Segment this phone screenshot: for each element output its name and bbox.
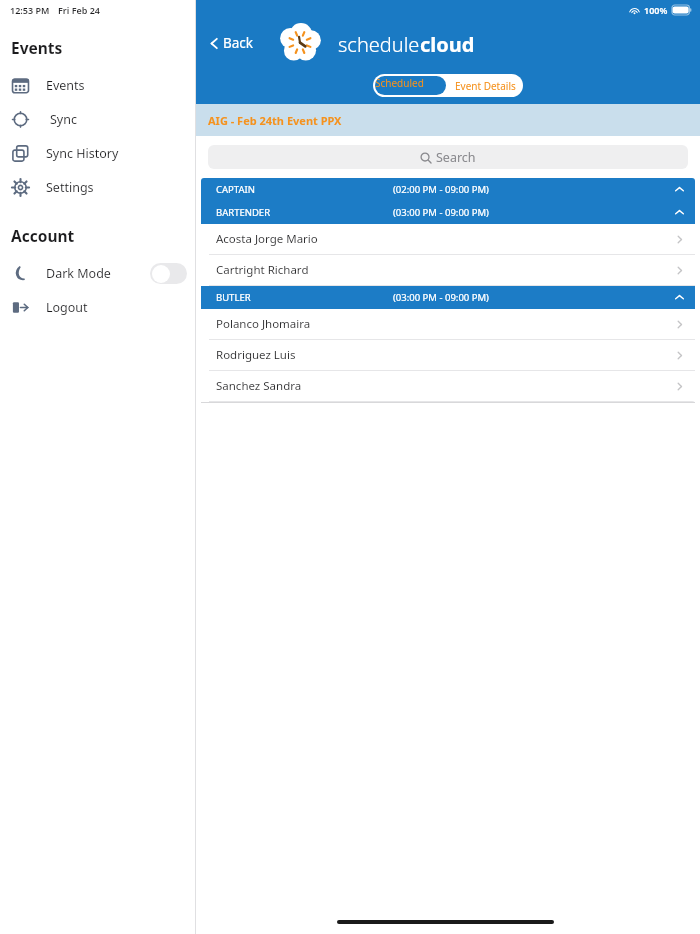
staticText: BARTENDER xyxy=(216,206,271,219)
staticText: Logout xyxy=(46,299,88,316)
button[interactable]: BUTLER xyxy=(201,286,695,309)
staticText: Dark Mode xyxy=(46,265,111,282)
staticText: AIG - Feb 24th Event PPX xyxy=(208,113,342,128)
button[interactable]: Polanco Jhomaira xyxy=(201,309,695,339)
button[interactable]: Search xyxy=(208,145,688,169)
other: Collapse BUTLER xyxy=(674,292,685,303)
button[interactable]: Acosta Jorge Mario xyxy=(201,224,695,254)
staticText: Cartright Richard xyxy=(216,262,309,278)
staticText: schedule xyxy=(338,31,420,58)
staticText: Events xyxy=(11,37,63,58)
staticText: (03:00 PM - 09:00 PM) xyxy=(393,206,489,219)
button[interactable]: Sync History xyxy=(0,136,195,170)
staticText: Acosta Jorge Mario xyxy=(216,231,318,247)
staticText: Search xyxy=(436,149,476,166)
staticText: Events xyxy=(46,77,85,94)
button[interactable]: Dark Mode xyxy=(0,256,195,290)
staticText: Rodriguez Luis xyxy=(216,347,296,363)
staticText: 12:53 PM xyxy=(10,4,50,16)
staticText: CAPTAIN xyxy=(216,183,255,196)
button[interactable]: Scheduled Emp xyxy=(375,76,446,95)
button[interactable]: Dark Mode toggle xyxy=(150,263,187,284)
button[interactable]: Sanchez Sandra xyxy=(201,371,695,401)
other: Collapse BARTENDER xyxy=(674,207,685,218)
staticText: (03:00 PM - 09:00 PM) xyxy=(393,291,489,304)
staticText: Scheduled Emp xyxy=(375,76,446,95)
button[interactable]: BARTENDER xyxy=(201,201,695,224)
staticText: Settings xyxy=(46,179,94,196)
button[interactable]: Events xyxy=(0,68,195,102)
staticText: Polanco Jhomaira xyxy=(216,316,311,332)
staticText: cloud xyxy=(420,31,475,58)
button[interactable]: Cartright Richard xyxy=(201,255,695,285)
staticText: Sync xyxy=(50,111,77,128)
staticText: (02:00 PM - 09:00 PM) xyxy=(393,183,489,196)
button[interactable]: Rodriguez Luis xyxy=(201,340,695,370)
button[interactable]: Settings xyxy=(0,170,195,204)
button[interactable]: Back xyxy=(202,30,260,56)
staticText: Account xyxy=(11,225,75,246)
staticText: Back xyxy=(223,34,254,52)
staticText: Sanchez Sandra xyxy=(216,378,302,394)
other: Collapse CAPTAIN xyxy=(674,184,685,195)
staticText: BUTLER xyxy=(216,291,251,304)
staticText: Fri Feb 24 xyxy=(58,4,101,16)
button[interactable]: Logout xyxy=(0,290,195,324)
button[interactable]: Sync xyxy=(0,102,195,136)
button[interactable]: Event Details xyxy=(448,74,523,97)
button[interactable]: CAPTAIN xyxy=(201,178,695,201)
staticText: Sync History xyxy=(46,145,119,162)
staticText: Event Details xyxy=(455,79,516,93)
staticText: 100% xyxy=(644,4,668,16)
